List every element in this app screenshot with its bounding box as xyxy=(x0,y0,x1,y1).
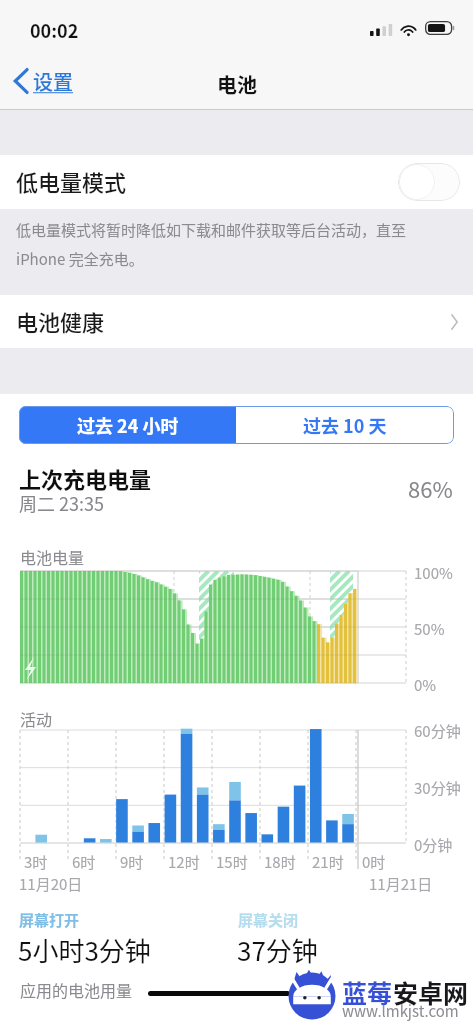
staticText: 活动 xyxy=(20,707,53,730)
staticText: 应用的电池用量 xyxy=(20,978,133,1001)
staticText: 00:02 xyxy=(30,17,79,43)
staticText: 11月20日 xyxy=(19,873,83,895)
staticText: 100% xyxy=(414,562,453,584)
button[interactable]: 过去 10 天 xyxy=(236,406,454,444)
button[interactable]: 电池健康 xyxy=(0,295,473,348)
staticText: 86% xyxy=(408,472,453,504)
staticText: 电池电量 xyxy=(20,545,85,568)
staticText: 11月21日 xyxy=(369,873,433,895)
staticText: 低电量模式 xyxy=(16,165,127,197)
staticText: 18时 xyxy=(264,851,296,873)
button[interactable]: 设置 xyxy=(8,64,81,98)
staticText: 屏幕打开 xyxy=(19,909,80,931)
button[interactable]: Low Power Mode toggle xyxy=(398,163,460,201)
staticText: 3时 xyxy=(24,851,48,873)
staticText: 蓝莓 xyxy=(342,974,393,1010)
staticText: 周二 23:35 xyxy=(19,490,104,516)
staticText: 过去 24 小时 xyxy=(77,412,179,438)
staticText: 60分钟 xyxy=(414,720,461,742)
staticText: 低电量模式将暂时降低如下载和邮件获取等后台活动，直至 xyxy=(16,219,407,241)
staticText: 电池健康 xyxy=(16,305,105,337)
staticText: 21时 xyxy=(312,851,344,873)
button[interactable]: 过去 24 小时 xyxy=(19,406,236,444)
staticText: 15时 xyxy=(216,851,248,873)
staticText: 0% xyxy=(414,674,437,696)
staticText: 6时 xyxy=(72,851,96,873)
staticText: 9时 xyxy=(120,851,144,873)
staticText: 50% xyxy=(414,618,445,640)
staticText: 0分钟 xyxy=(414,834,453,856)
staticText: 上次充电电量 xyxy=(19,462,152,494)
staticText: www.lmkjst.com xyxy=(342,1000,459,1022)
staticText: 12时 xyxy=(168,851,200,873)
staticText: 电池 xyxy=(217,70,257,99)
staticText: 屏幕关闭 xyxy=(238,909,299,931)
staticText: iPhone 完全充电。 xyxy=(16,248,144,270)
button[interactable]: 低电量模式 xyxy=(0,155,473,209)
staticText: 30分钟 xyxy=(414,777,461,799)
staticText: 过去 10 天 xyxy=(303,412,387,438)
staticText: 5小时3分钟 xyxy=(18,931,151,969)
staticText: 37分钟 xyxy=(237,931,318,969)
staticText: 设置 xyxy=(33,67,73,96)
staticText: 安卓网 xyxy=(393,974,469,1010)
staticText: 0时 xyxy=(362,851,386,873)
